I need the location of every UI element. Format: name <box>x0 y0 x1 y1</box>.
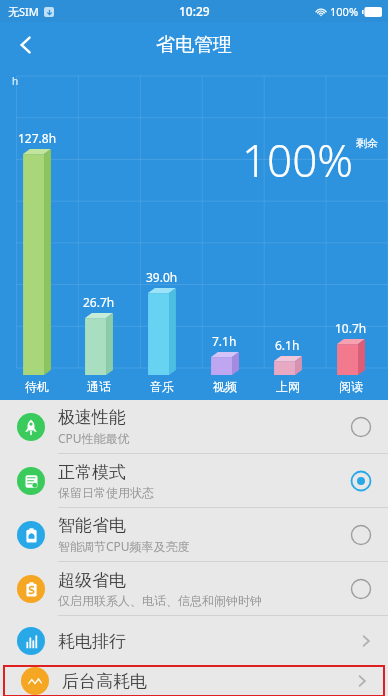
staticText: 100% <box>242 130 354 190</box>
staticText: CPU性能最优 <box>58 430 130 446</box>
staticText: 剩余 <box>356 136 378 150</box>
staticText: 26.7h <box>83 294 115 310</box>
button[interactable]: 超级省电 <box>0 562 388 615</box>
staticText: 10.7h <box>335 320 367 336</box>
staticText: 7.1h <box>212 333 237 349</box>
staticText: 通话 <box>87 379 111 394</box>
staticText: 保留日常使用状态 <box>58 485 154 500</box>
staticText: 6.1h <box>275 337 300 353</box>
staticText: 上网 <box>276 379 300 394</box>
staticText: 正常模式 <box>58 462 126 483</box>
staticText: 智能调节CPU频率及亮度 <box>58 538 190 554</box>
staticText: 省电管理 <box>156 33 232 57</box>
button[interactable]: 极速性能 <box>0 400 388 453</box>
staticText: 10:29 <box>179 3 210 19</box>
button[interactable]: Back <box>0 22 52 68</box>
button[interactable]: 正常模式 <box>0 454 388 507</box>
staticText: 耗电排行 <box>58 631 126 652</box>
staticText: 后台高耗电 <box>62 671 147 692</box>
staticText: 智能省电 <box>58 515 126 536</box>
staticText: 100% <box>330 4 359 19</box>
staticText: h <box>12 74 19 88</box>
staticText: 仅启用联系人、电话、信息和闹钟时钟 <box>58 593 262 608</box>
staticText: 127.8h <box>18 130 57 146</box>
staticText: 极速性能 <box>58 407 126 428</box>
staticText: 阅读 <box>339 379 363 394</box>
button[interactable]: 智能省电 <box>0 508 388 561</box>
staticText: 无SIM <box>8 4 39 19</box>
button[interactable]: 耗电排行 <box>0 616 388 666</box>
staticText: 视频 <box>213 379 237 394</box>
staticText: 39.0h <box>146 269 178 285</box>
button[interactable]: 后台高耗电 <box>4 666 384 696</box>
staticText: 音乐 <box>150 379 174 394</box>
staticText: 待机 <box>25 379 49 394</box>
staticText: 超级省电 <box>58 570 126 591</box>
